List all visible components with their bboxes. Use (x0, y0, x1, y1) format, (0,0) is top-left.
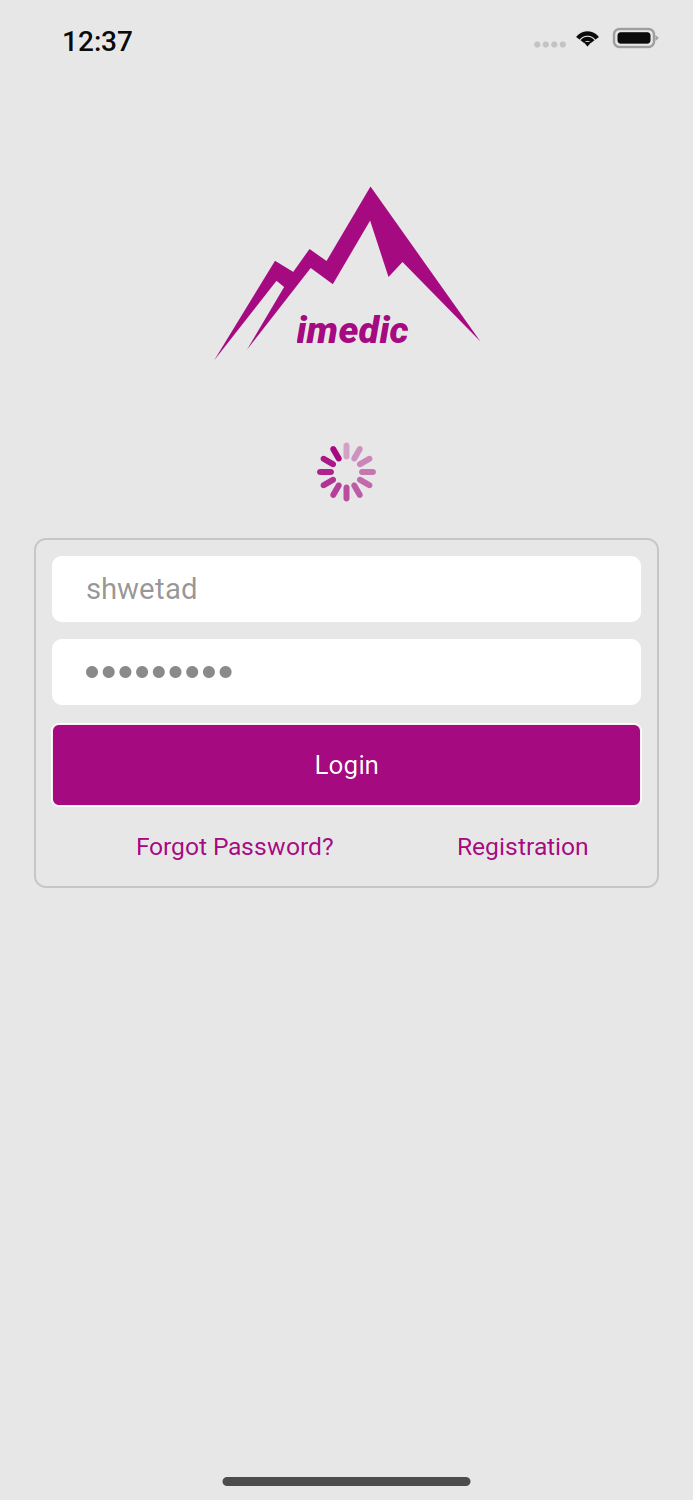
staticText: 12:37 (62, 25, 133, 58)
staticText: shwetad (86, 572, 198, 606)
staticText: Registration (457, 832, 589, 861)
button[interactable]: Login (52, 724, 641, 806)
button[interactable]: Registration (423, 806, 623, 887)
staticText: Forgot Password? (136, 832, 334, 861)
staticText: imedic (296, 308, 408, 352)
staticText: Login (314, 750, 378, 780)
button[interactable]: Forgot Password? (105, 806, 365, 887)
